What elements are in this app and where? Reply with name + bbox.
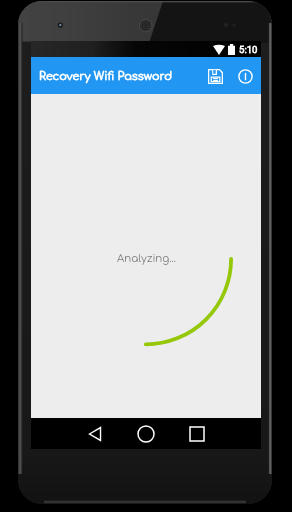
staticText: 5:10: [239, 44, 258, 55]
button[interactable]: Home: [130, 418, 162, 449]
staticText: Recovery Wifi Password: [39, 70, 173, 82]
button[interactable]: Recents: [181, 418, 213, 449]
button[interactable]: Back: [79, 418, 111, 449]
button[interactable]: Info: [230, 61, 260, 91]
button[interactable]: Save: [200, 61, 230, 91]
staticText: Analyzing...: [117, 253, 176, 264]
